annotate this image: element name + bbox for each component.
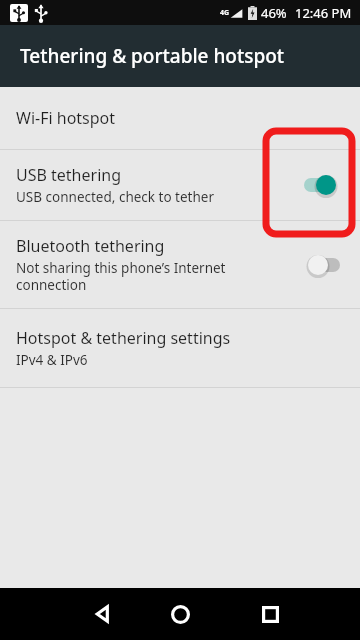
staticText: Wi-Fi hotspot bbox=[16, 107, 116, 129]
button[interactable]: Bluetooth tethering bbox=[0, 221, 360, 308]
staticText: Hotspot & tethering settings bbox=[16, 327, 231, 349]
staticText: USB tethering bbox=[16, 164, 121, 186]
button[interactable]: Hotspot & tethering settings bbox=[0, 309, 360, 387]
staticText: 12:46 PM bbox=[295, 4, 352, 22]
button[interactable]: USB tethering bbox=[0, 150, 360, 220]
staticText: 46% bbox=[261, 4, 287, 22]
button[interactable]: Toggle on bbox=[300, 171, 344, 199]
staticText: Bluetooth tethering bbox=[16, 235, 165, 257]
button[interactable]: Recent apps bbox=[255, 599, 285, 629]
staticText: IPv4 & IPv6 bbox=[16, 351, 88, 369]
button[interactable]: Wi-Fi hotspot bbox=[0, 87, 360, 149]
staticText: Tethering & portable hotspot bbox=[20, 43, 285, 69]
staticText: Not sharing this phone’s Internet connec… bbox=[16, 259, 288, 294]
button[interactable]: Home bbox=[163, 597, 197, 631]
staticText: USB connected, check to tether bbox=[16, 188, 214, 206]
button[interactable]: Toggle off bbox=[300, 251, 344, 279]
button[interactable]: Back bbox=[88, 599, 118, 629]
staticText: 4G bbox=[220, 8, 230, 18]
